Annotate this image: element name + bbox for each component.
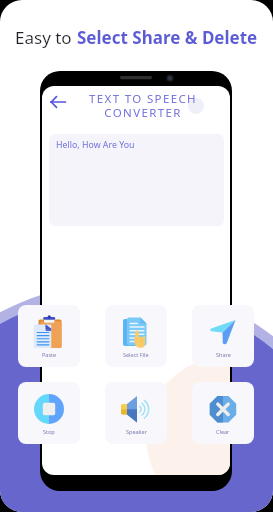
- staticText: Select File: [123, 351, 149, 358]
- button[interactable]: Paste: [18, 305, 80, 367]
- staticText: TEXT TO SPEECH CONVERTER: [52, 91, 230, 120]
- staticText: Easy to: [15, 26, 77, 49]
- staticText: Clear: [216, 428, 230, 435]
- button[interactable]: Speaker: [105, 382, 167, 444]
- button[interactable]: Back: [47, 91, 69, 113]
- staticText: Share: [216, 351, 231, 358]
- staticText: Select Share & Delete: [77, 26, 258, 49]
- staticText: Paste: [42, 351, 57, 358]
- staticText: Hello, How Are You: [56, 139, 135, 151]
- staticText: Stop: [43, 428, 55, 435]
- button[interactable]: Stop: [18, 382, 80, 444]
- button[interactable]: Clear: [192, 382, 254, 444]
- button[interactable]: Select File: [105, 305, 167, 367]
- staticText: Speaker: [126, 428, 147, 435]
- button[interactable]: Share: [192, 305, 254, 367]
